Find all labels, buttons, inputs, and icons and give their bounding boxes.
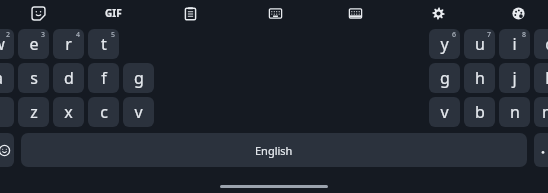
staticText: v <box>134 101 143 123</box>
staticText: 4 <box>76 30 81 40</box>
staticText: u <box>475 33 485 55</box>
button[interactable]: g <box>429 63 460 93</box>
staticText: m <box>542 101 548 123</box>
button[interactable]: m <box>534 97 548 127</box>
button[interactable]: i <box>499 29 530 59</box>
staticText: 2 <box>6 30 11 40</box>
staticText: 7 <box>487 30 492 40</box>
button[interactable]: v <box>429 97 460 127</box>
button[interactable]: b <box>464 97 495 127</box>
staticText: s <box>30 67 38 89</box>
button[interactable]: Resize keyboard <box>341 0 369 26</box>
staticText: g <box>134 67 144 89</box>
staticText: English <box>255 143 293 158</box>
staticText: a <box>0 67 3 89</box>
staticText: g <box>440 67 450 89</box>
staticText: k <box>545 67 548 89</box>
staticText: c <box>100 101 108 123</box>
button[interactable]: Settings <box>424 0 452 26</box>
staticText: 3 <box>41 30 46 40</box>
staticText: z <box>30 101 38 123</box>
button[interactable]: k <box>534 63 548 93</box>
button[interactable]: e <box>18 29 49 59</box>
staticText: w <box>0 33 5 55</box>
button[interactable]: f <box>88 63 119 93</box>
button[interactable]: u <box>464 29 495 59</box>
button[interactable]: s <box>18 63 49 93</box>
staticText: x <box>64 101 73 123</box>
button[interactable]: y <box>429 29 460 59</box>
staticText: e <box>29 33 39 55</box>
button[interactable]: Emoji <box>0 133 14 167</box>
button[interactable]: English <box>21 133 527 167</box>
staticText: v <box>440 101 449 123</box>
button[interactable]: g <box>123 63 154 93</box>
button[interactable]: x <box>53 97 84 127</box>
button[interactable]: One-handed mode <box>261 0 289 26</box>
button[interactable]: h <box>464 63 495 93</box>
staticText: f <box>101 67 107 89</box>
staticText: t <box>101 33 107 55</box>
staticText: r <box>65 33 72 55</box>
button[interactable]: j <box>499 63 530 93</box>
button[interactable]: Themes <box>504 0 532 26</box>
staticText: 6 <box>452 30 457 40</box>
button[interactable]: v <box>123 97 154 127</box>
button[interactable]: Period <box>534 133 548 167</box>
button[interactable]: o <box>534 29 548 59</box>
staticText: 8 <box>522 30 527 40</box>
button[interactable]: t <box>88 29 119 59</box>
staticText: 5 <box>111 30 116 40</box>
staticText: d <box>64 67 74 89</box>
staticText: i <box>512 33 517 55</box>
button[interactable]: n <box>499 97 530 127</box>
button[interactable] <box>0 97 14 127</box>
staticText: y <box>440 33 449 55</box>
button[interactable]: w <box>0 29 14 59</box>
button[interactable]: Stickers <box>24 0 52 26</box>
staticText: GIF <box>105 6 122 20</box>
staticText: o <box>545 33 548 55</box>
button[interactable]: d <box>53 63 84 93</box>
button[interactable]: z <box>18 97 49 127</box>
button[interactable]: Clipboard <box>176 0 204 26</box>
staticText: b <box>475 101 485 123</box>
button[interactable]: GIF <box>96 1 130 25</box>
button[interactable]: a <box>0 63 14 93</box>
staticText: h <box>475 67 485 89</box>
button[interactable]: r <box>53 29 84 59</box>
staticText: n <box>510 101 520 123</box>
button[interactable]: c <box>88 97 119 127</box>
staticText: j <box>512 67 517 89</box>
